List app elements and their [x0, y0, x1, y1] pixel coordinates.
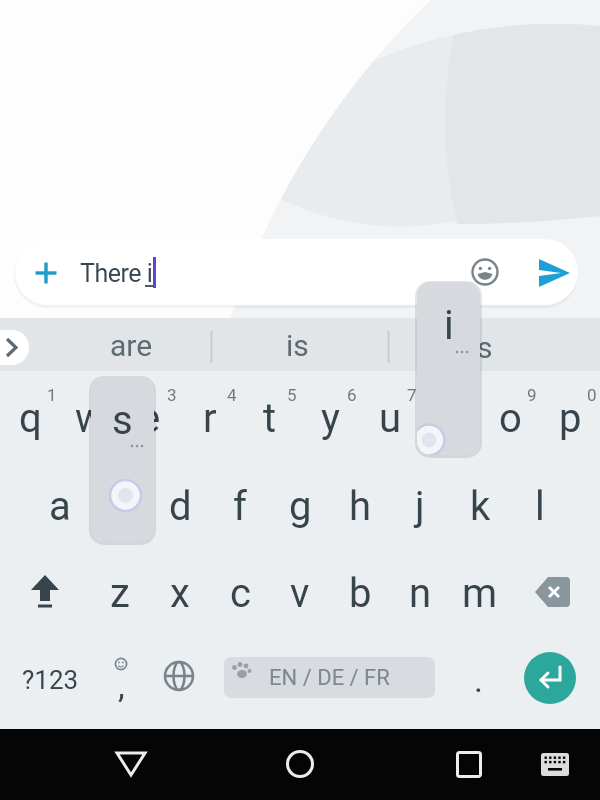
button[interactable]: u	[360, 376, 420, 460]
button[interactable]	[15, 239, 578, 305]
staticText: a	[49, 483, 71, 530]
staticText: d	[169, 483, 192, 530]
staticText: There i	[80, 259, 153, 288]
button[interactable]: k	[450, 464, 510, 548]
button[interactable]: .	[450, 640, 506, 720]
button[interactable]: n	[390, 551, 450, 635]
button[interactable]	[96, 729, 166, 800]
staticText: q	[19, 395, 42, 442]
button[interactable]: is	[236, 322, 358, 368]
button[interactable]	[30, 257, 62, 289]
button[interactable]	[150, 638, 210, 722]
button[interactable]: d	[150, 464, 210, 548]
staticText: 7	[407, 385, 417, 405]
button[interactable]: i	[420, 376, 480, 460]
button[interactable]: f	[210, 464, 270, 548]
button[interactable]: y	[300, 376, 360, 460]
button[interactable]: g	[270, 464, 330, 548]
staticText: 5	[287, 385, 297, 405]
staticText: c	[230, 570, 251, 617]
staticText: m	[462, 570, 498, 617]
button[interactable]: v	[270, 551, 330, 635]
button[interactable]: l	[510, 464, 570, 548]
button[interactable]: ,	[90, 638, 150, 722]
staticText: b	[349, 570, 372, 617]
button[interactable]: o	[480, 376, 540, 460]
staticText: l	[535, 483, 545, 530]
button[interactable]: q	[0, 376, 60, 460]
button[interactable]	[510, 551, 600, 635]
staticText: o	[499, 395, 522, 442]
staticText: i	[444, 302, 454, 349]
button[interactable]	[0, 551, 90, 635]
button[interactable]	[534, 254, 574, 292]
button[interactable]	[524, 652, 576, 704]
button[interactable]: p	[540, 376, 600, 460]
button[interactable]: a	[30, 464, 90, 548]
staticText: g	[289, 483, 312, 530]
button[interactable]: are	[70, 322, 192, 368]
staticText: .	[474, 660, 483, 700]
staticText: s	[112, 397, 133, 444]
button[interactable]: w	[60, 376, 120, 460]
staticText: j	[415, 483, 425, 530]
button[interactable]	[470, 257, 500, 287]
staticText: t	[263, 395, 277, 442]
staticText: 3	[167, 385, 177, 405]
staticText: 4	[227, 385, 237, 405]
button[interactable]: ?123	[10, 638, 90, 722]
button[interactable]: m	[450, 551, 510, 635]
staticText: w	[75, 395, 106, 442]
staticText: is	[286, 328, 309, 363]
staticText: h	[349, 483, 372, 530]
button[interactable]: t	[240, 376, 300, 460]
staticText: e	[139, 395, 161, 442]
staticText: ?123	[22, 665, 79, 695]
staticText: f	[233, 483, 247, 530]
button[interactable]: e	[120, 376, 180, 460]
button[interactable]	[265, 729, 335, 800]
button[interactable]: j	[390, 464, 450, 548]
button[interactable]: z	[90, 551, 150, 635]
button[interactable]: c	[210, 551, 270, 635]
staticText: EN / DE / FR	[269, 665, 390, 691]
staticText: are	[110, 328, 153, 363]
button[interactable]: s	[90, 464, 150, 548]
staticText: 6	[347, 385, 357, 405]
staticText: s	[110, 483, 131, 530]
button[interactable]: b	[330, 551, 390, 635]
staticText: y	[321, 395, 340, 442]
button[interactable]	[535, 740, 580, 788]
staticText: r	[203, 395, 217, 442]
button[interactable]: x	[150, 551, 210, 635]
staticText: ,	[118, 666, 125, 706]
staticText: 1	[47, 385, 57, 405]
button[interactable]: r	[180, 376, 240, 460]
staticText: s	[477, 330, 493, 365]
staticText: u	[379, 395, 402, 442]
button[interactable]	[0, 330, 29, 365]
button[interactable]	[434, 729, 504, 800]
staticText: 0	[587, 385, 597, 405]
staticText: 9	[527, 385, 537, 405]
staticText: z	[110, 570, 130, 617]
button[interactable]: EN / DE / FR	[224, 657, 435, 698]
staticText: p	[559, 395, 582, 442]
button[interactable]: h	[330, 464, 390, 548]
staticText: k	[470, 483, 491, 530]
staticText: v	[290, 570, 310, 617]
staticText: n	[409, 570, 432, 617]
staticText: x	[170, 570, 190, 617]
